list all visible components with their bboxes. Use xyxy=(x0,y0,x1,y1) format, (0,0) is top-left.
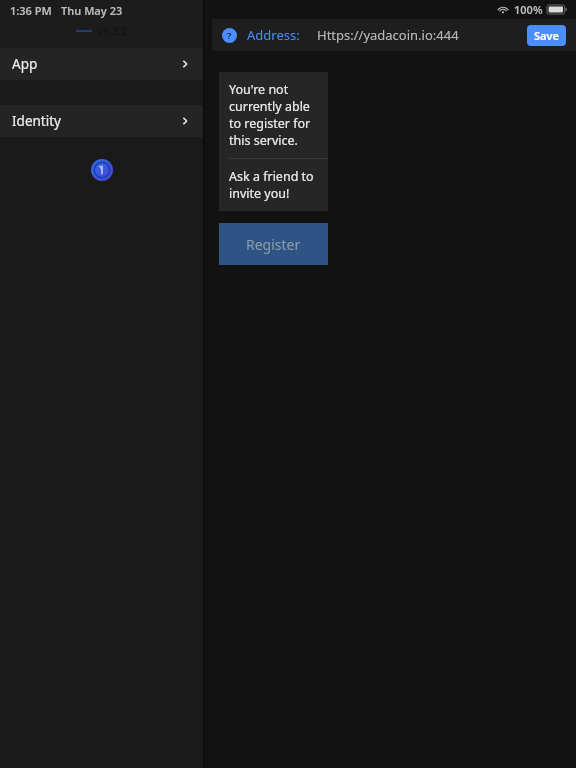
button[interactable]: Help xyxy=(222,28,237,43)
staticText: Register xyxy=(246,235,301,254)
other: Battery xyxy=(547,5,567,14)
staticText: Ask a friend to invite you! xyxy=(229,168,314,202)
staticText: App xyxy=(12,55,38,73)
staticText: Save xyxy=(534,28,559,43)
button[interactable]: Identity xyxy=(0,105,203,137)
button[interactable]: Register xyxy=(219,223,328,265)
staticText: You're not currently able to register fo… xyxy=(229,81,311,149)
staticText: Identity xyxy=(12,112,61,130)
staticText: Https://yadacoin.io:444 xyxy=(317,26,459,44)
staticText: 100% xyxy=(514,2,543,17)
staticText: Address: xyxy=(247,26,300,44)
button[interactable]: Save xyxy=(527,25,566,46)
button[interactable]: App xyxy=(0,48,203,80)
staticText: Thu May 23 xyxy=(61,3,123,18)
staticText: 1:36 PM xyxy=(10,3,52,18)
other: Wi-Fi xyxy=(497,5,509,14)
staticText: ? xyxy=(227,29,232,42)
